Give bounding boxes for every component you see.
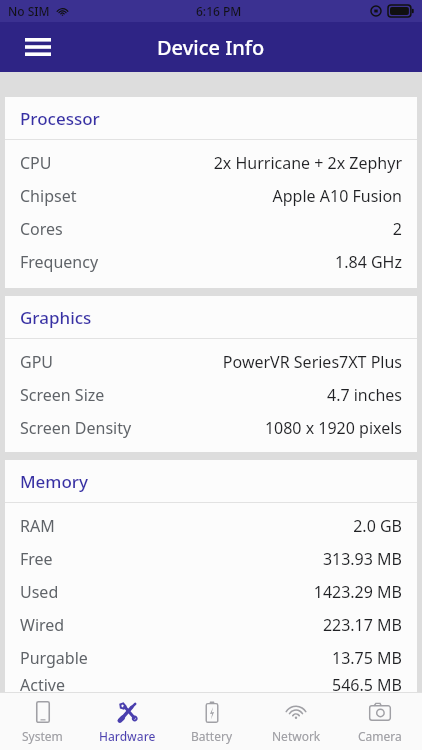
staticText: CPU bbox=[20, 152, 52, 174]
staticText: 1423.29 MB bbox=[313, 581, 402, 603]
staticText: Network bbox=[272, 728, 321, 744]
staticText: 2 bbox=[392, 218, 402, 240]
button[interactable]: Used bbox=[5, 575, 417, 608]
button[interactable]: Screen Density bbox=[5, 411, 417, 444]
staticText: GPU bbox=[20, 351, 54, 373]
staticText: Active bbox=[20, 674, 65, 692]
staticText: Apple A10 Fusion bbox=[272, 185, 402, 207]
staticText: Screen Density bbox=[20, 417, 132, 439]
button[interactable]: Processor bbox=[5, 97, 417, 139]
staticText: 313.93 MB bbox=[322, 548, 402, 570]
staticText: Wired bbox=[20, 614, 65, 636]
staticText: Battery bbox=[191, 728, 233, 744]
button[interactable]: Memory bbox=[5, 460, 417, 502]
staticText: Cores bbox=[20, 218, 63, 240]
button[interactable]: GPU bbox=[5, 345, 417, 378]
staticText: Purgable bbox=[20, 647, 88, 669]
staticText: Camera bbox=[358, 728, 402, 744]
staticText: 223.17 MB bbox=[322, 614, 402, 636]
button[interactable]: RAM bbox=[5, 509, 417, 542]
button[interactable]: Network bbox=[254, 693, 338, 750]
staticText: Screen Size bbox=[20, 384, 105, 406]
staticText: Used bbox=[20, 581, 59, 603]
staticText: Frequency bbox=[20, 251, 99, 273]
staticText: Processor bbox=[20, 107, 100, 130]
staticText: 1080 x 1920 pixels bbox=[264, 417, 402, 439]
staticText: Memory bbox=[20, 470, 89, 493]
staticText: Free bbox=[20, 548, 53, 570]
button[interactable]: Camera bbox=[338, 693, 422, 750]
button[interactable]: System bbox=[0, 693, 85, 750]
staticText: Graphics bbox=[20, 306, 92, 329]
staticText: 13.75 MB bbox=[332, 647, 402, 669]
button[interactable]: Cores bbox=[5, 212, 417, 245]
staticText: 6:16 PM bbox=[196, 3, 242, 19]
staticText: 2x Hurricane + 2x Zephyr bbox=[213, 152, 402, 174]
staticText: Hardware bbox=[99, 728, 156, 744]
staticText: System bbox=[22, 728, 63, 744]
button[interactable]: Hardware bbox=[85, 693, 170, 750]
staticText: 546.5 MB bbox=[332, 674, 402, 692]
staticText: RAM bbox=[20, 515, 55, 537]
button[interactable]: Active bbox=[5, 674, 417, 692]
button[interactable]: Screen Size bbox=[5, 378, 417, 411]
button[interactable]: Chipset bbox=[5, 179, 417, 212]
button[interactable]: Open navigation menu bbox=[14, 23, 62, 71]
button[interactable]: Battery bbox=[170, 693, 254, 750]
staticText: 2.0 GB bbox=[353, 515, 402, 537]
button[interactable]: Purgable bbox=[5, 641, 417, 674]
button[interactable]: Frequency bbox=[5, 245, 417, 278]
staticText: PowerVR Series7XT Plus bbox=[222, 351, 402, 373]
staticText: Chipset bbox=[20, 185, 77, 207]
staticText: 1.84 GHz bbox=[335, 251, 402, 273]
button[interactable]: Graphics bbox=[5, 296, 417, 338]
staticText: No SIM bbox=[8, 3, 50, 19]
staticText: Device Info bbox=[157, 34, 265, 61]
staticText: 4.7 inches bbox=[326, 384, 402, 406]
button[interactable]: CPU bbox=[5, 146, 417, 179]
button[interactable]: Free bbox=[5, 542, 417, 575]
button[interactable]: Wired bbox=[5, 608, 417, 641]
